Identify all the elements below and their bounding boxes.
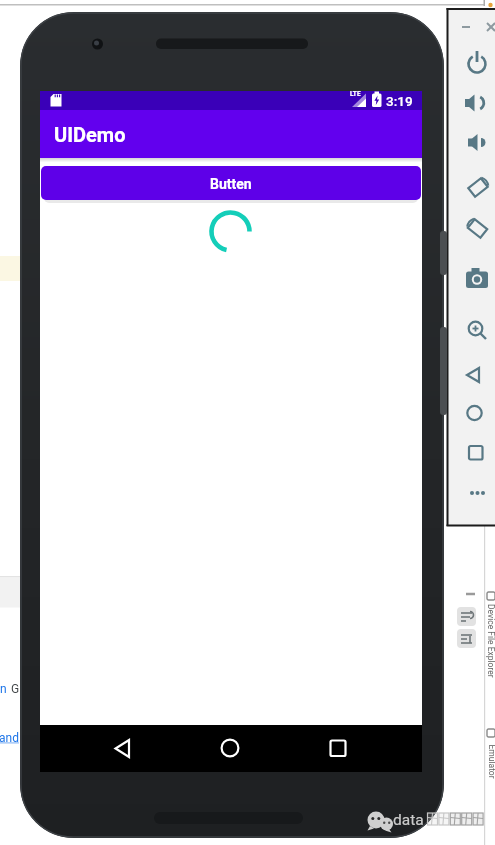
button[interactable]: Butten <box>41 166 421 200</box>
staticText: 3:19 <box>386 93 413 109</box>
button[interactable] <box>213 731 247 765</box>
staticText: LTE <box>350 90 361 98</box>
staticText: Device File Explorer <box>486 604 495 678</box>
button[interactable] <box>105 731 139 765</box>
button[interactable] <box>321 731 355 765</box>
staticText: Butten <box>210 176 252 192</box>
staticText: data <box>393 811 424 829</box>
staticText: UIDemo <box>54 123 126 146</box>
staticText: n <box>0 682 7 696</box>
staticText: and <box>0 731 19 745</box>
staticText: G <box>11 682 20 696</box>
staticText: Emulator <box>486 744 495 779</box>
button[interactable]: and <box>0 731 19 745</box>
